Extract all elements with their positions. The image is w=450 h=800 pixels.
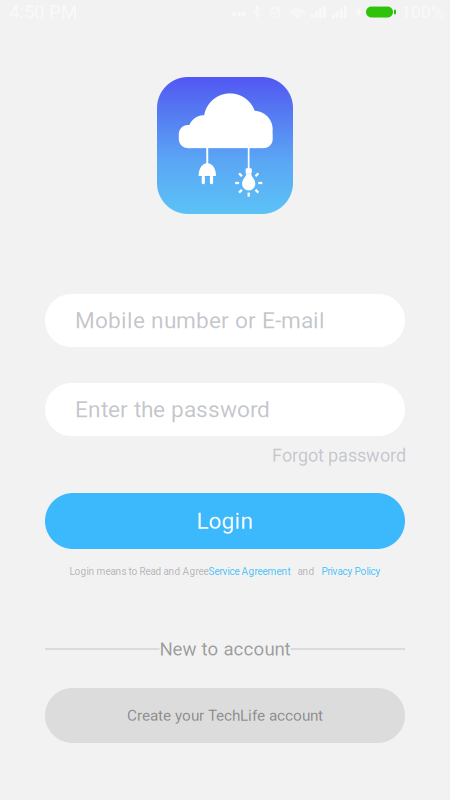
button[interactable]: Login	[45, 493, 405, 549]
staticText: and	[297, 566, 314, 577]
button[interactable]: Forgot password	[44, 444, 406, 467]
staticText: Mobile number or E-mail	[75, 307, 325, 334]
button[interactable]: Enter the password	[45, 383, 405, 436]
staticText: Forgot password	[272, 445, 406, 466]
staticText: Enter the password	[75, 396, 270, 423]
button[interactable]: Privacy Policy	[321, 566, 380, 577]
button[interactable]: Service Agreement	[208, 566, 290, 577]
staticText: New to account	[159, 638, 290, 660]
staticText: Login means to Read and Agree	[69, 566, 208, 577]
button[interactable]: Create your TechLife account	[45, 688, 405, 743]
staticText: Login	[196, 508, 253, 534]
staticText: Create your TechLife account	[127, 706, 323, 724]
staticText: Privacy Policy	[321, 566, 380, 577]
staticText: Service Agreement	[208, 566, 290, 577]
button[interactable]: Mobile number or E-mail	[45, 294, 405, 347]
